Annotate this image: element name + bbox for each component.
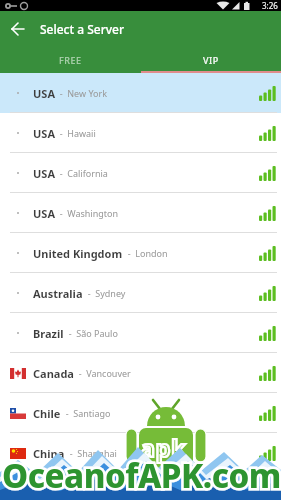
staticText: OceanofAPK.com	[2, 453, 281, 498]
staticText: USA	[33, 86, 55, 101]
staticText: - Santiago	[61, 407, 111, 419]
button[interactable]: USA	[0, 153, 281, 193]
staticText: apk	[141, 432, 187, 463]
button[interactable]: FREE	[0, 47, 140, 73]
staticText: - Vancouver	[74, 367, 131, 379]
button[interactable]: Canada	[0, 353, 281, 393]
button[interactable]: Chile	[0, 393, 281, 433]
staticText: USA	[33, 206, 55, 221]
button[interactable]: USA	[0, 73, 281, 113]
staticText: United Kingdom	[33, 246, 123, 261]
staticText: China	[33, 446, 65, 461]
button[interactable]: United Kingdom	[0, 233, 281, 273]
staticText: - California	[55, 167, 108, 179]
button[interactable]: China	[0, 433, 281, 473]
staticText: - Sydney	[83, 287, 126, 299]
staticText: - São Paulo	[64, 327, 118, 339]
staticText: - New York	[55, 87, 108, 99]
staticText: USA	[33, 126, 55, 141]
button[interactable]	[0, 11, 36, 47]
staticText: Brazil	[33, 326, 64, 341]
staticText: VIP	[203, 54, 219, 66]
staticText: 3:26	[262, 0, 278, 11]
staticText: Australia	[33, 286, 83, 301]
button[interactable]: USA	[0, 113, 281, 153]
staticText: Select a Server	[40, 21, 125, 37]
button[interactable]: USA	[0, 193, 281, 233]
staticText: Chile	[33, 406, 61, 421]
staticText: - Washington	[55, 207, 119, 219]
button[interactable]: Australia	[0, 273, 281, 313]
staticText: - London	[123, 247, 168, 259]
staticText: FREE	[59, 54, 82, 66]
staticText: Canada	[33, 366, 74, 381]
staticText: - Shanghai	[65, 447, 117, 459]
staticText: - Hawaii	[55, 127, 96, 139]
staticText: USA	[33, 166, 55, 181]
staticText: OceanofAPK.com	[2, 453, 281, 498]
button[interactable]: VIP	[140, 47, 281, 73]
button[interactable]: Brazil	[0, 313, 281, 353]
